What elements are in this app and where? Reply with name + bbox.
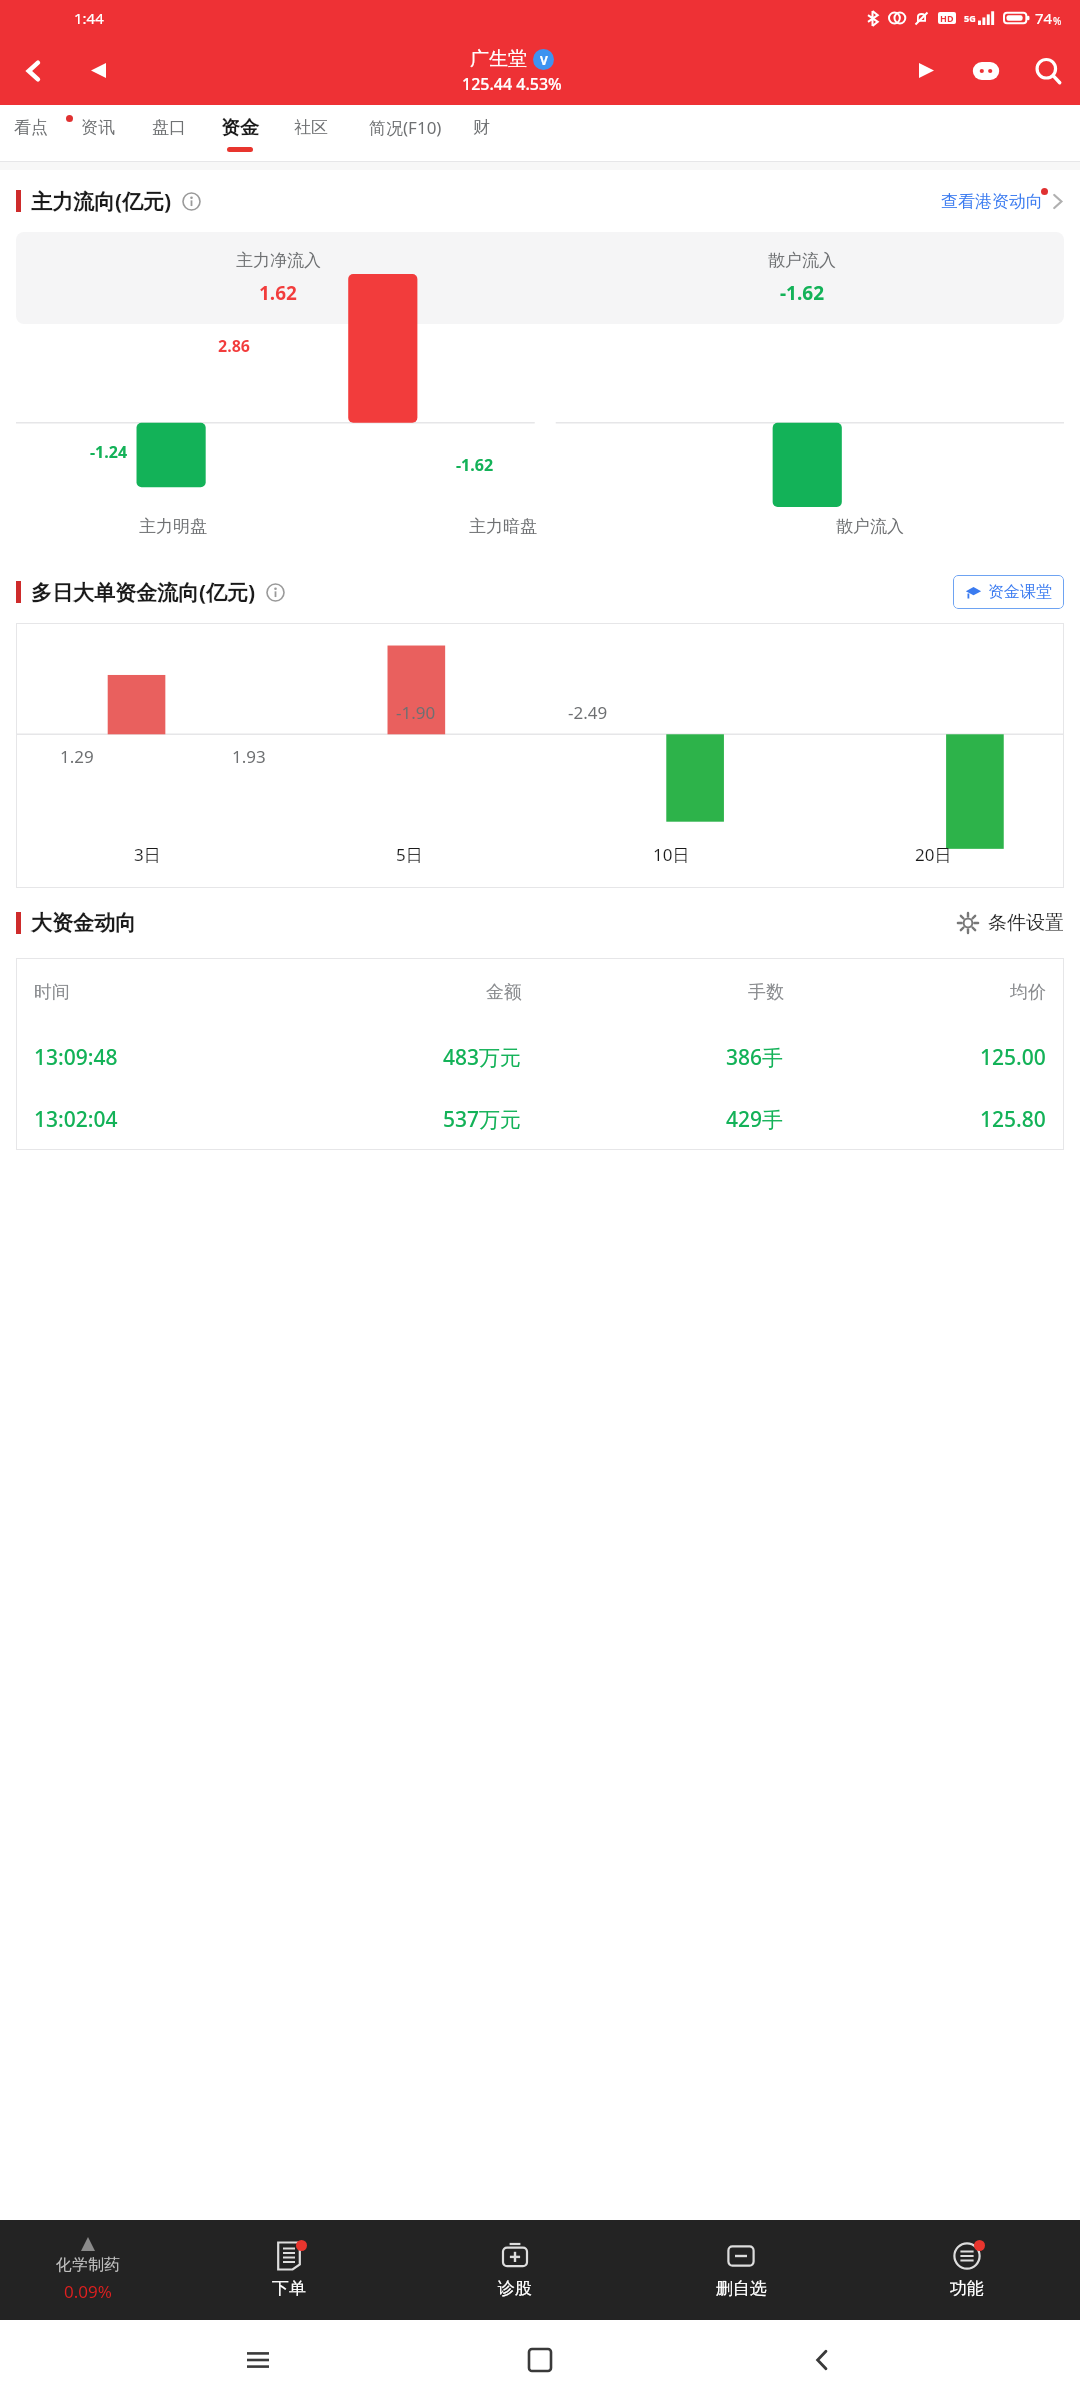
staticText: -2.49 <box>568 701 608 724</box>
button[interactable]: 资金 <box>204 105 275 162</box>
staticText: 1.62 <box>259 280 297 306</box>
button[interactable]: 13:02:04 <box>16 1088 1064 1150</box>
button[interactable]: 资讯 <box>62 105 133 162</box>
staticText: 广生堂 <box>470 47 527 71</box>
staticText: 主力明盘 <box>139 516 207 537</box>
staticText: 13:09:48 <box>34 1043 118 1072</box>
staticText: 5日 <box>396 843 423 866</box>
staticText: 大资金动向 <box>31 910 136 936</box>
staticText: 删自选 <box>716 2278 767 2299</box>
staticText: 散户流入 <box>836 516 904 537</box>
button[interactable]: Back <box>0 36 68 105</box>
staticText: 主力暗盘 <box>469 516 537 537</box>
staticText: 下单 <box>272 2278 306 2299</box>
staticText: 资讯 <box>81 117 115 138</box>
staticText: 0.09% <box>64 2280 112 2303</box>
button[interactable]: 社区 <box>275 105 346 162</box>
staticText: 1.93 <box>232 745 266 768</box>
button[interactable]: 功能 <box>854 2220 1080 2320</box>
staticText: 1.29 <box>60 745 94 768</box>
staticText: 时间 <box>34 981 70 1004</box>
staticText: 125.80 <box>980 1105 1046 1134</box>
staticText: -1.62 <box>780 280 825 306</box>
staticText: 主力流向(亿元) <box>31 187 172 216</box>
button[interactable]: Next stock <box>896 36 956 105</box>
button[interactable]: 下单 <box>176 2220 402 2320</box>
staticText: 多日大单资金流向(亿元) <box>31 578 256 607</box>
staticText: 537万元 <box>443 1105 522 1134</box>
button[interactable]: 化学制药 <box>0 2220 176 2320</box>
staticText: 主力净流入 <box>236 250 321 271</box>
button[interactable]: Recents <box>234 2336 282 2384</box>
button[interactable]: 诊股 <box>402 2220 628 2320</box>
staticText: 125.00 <box>980 1043 1046 1072</box>
staticText: V <box>540 52 548 68</box>
staticText: 金额 <box>486 981 522 1004</box>
button[interactable]: 删自选 <box>628 2220 854 2320</box>
staticText: 386手 <box>726 1043 784 1072</box>
staticText: -1.90 <box>396 701 436 724</box>
staticText: 看点 <box>14 117 48 138</box>
button[interactable]: Back <box>798 2336 846 2384</box>
button[interactable]: 财 <box>464 105 498 162</box>
staticText: 化学制药 <box>56 2255 120 2275</box>
button[interactable]: 条件设置 <box>957 911 1064 935</box>
staticText: 手数 <box>748 981 784 1004</box>
button[interactable]: 资金课堂 <box>953 575 1064 609</box>
staticText: 3日 <box>134 843 161 866</box>
button[interactable]: 散户流入 <box>540 232 1064 324</box>
button[interactable]: 看点 <box>0 105 62 162</box>
button[interactable]: 主力净流入 <box>16 232 540 324</box>
button[interactable]: 查看港资动向 <box>941 191 1064 212</box>
staticText: 散户流入 <box>768 250 836 271</box>
staticText: 资金 <box>221 116 259 140</box>
staticText: 125.44 4.53% <box>462 73 562 95</box>
staticText: 社区 <box>294 117 328 138</box>
staticText: 483万元 <box>443 1043 522 1072</box>
staticText: 13:02:04 <box>34 1105 118 1134</box>
staticText: 5G <box>964 12 976 24</box>
staticText: 429手 <box>726 1105 784 1134</box>
staticText: 74 <box>1035 8 1053 28</box>
staticText: 资金课堂 <box>988 582 1052 602</box>
staticText: 功能 <box>950 2278 984 2299</box>
staticText: HD <box>940 12 954 24</box>
staticText: % <box>1053 14 1062 28</box>
staticText: -1.62 <box>456 454 494 476</box>
button[interactable]: AI assistant <box>956 36 1016 105</box>
staticText: 10日 <box>653 843 690 866</box>
button[interactable]: Home <box>516 2336 564 2384</box>
button[interactable]: 简况(F10) <box>346 105 464 162</box>
button[interactable]: Previous stock <box>68 36 128 105</box>
staticText: 20日 <box>915 843 952 866</box>
button[interactable]: 盘口 <box>133 105 204 162</box>
staticText: 查看港资动向 <box>941 191 1043 212</box>
staticText: -1.24 <box>90 441 128 463</box>
staticText: 条件设置 <box>988 911 1064 935</box>
button[interactable]: 13:09:48 <box>16 1026 1064 1088</box>
staticText: 均价 <box>1010 981 1046 1004</box>
staticText: 简况(F10) <box>369 116 442 139</box>
staticText: 财 <box>473 117 490 138</box>
button[interactable]: Search <box>1016 36 1080 105</box>
staticText: 2.86 <box>218 335 250 357</box>
staticText: 1:44 <box>74 8 104 28</box>
staticText: 盘口 <box>152 117 186 138</box>
staticText: 诊股 <box>498 2278 532 2299</box>
